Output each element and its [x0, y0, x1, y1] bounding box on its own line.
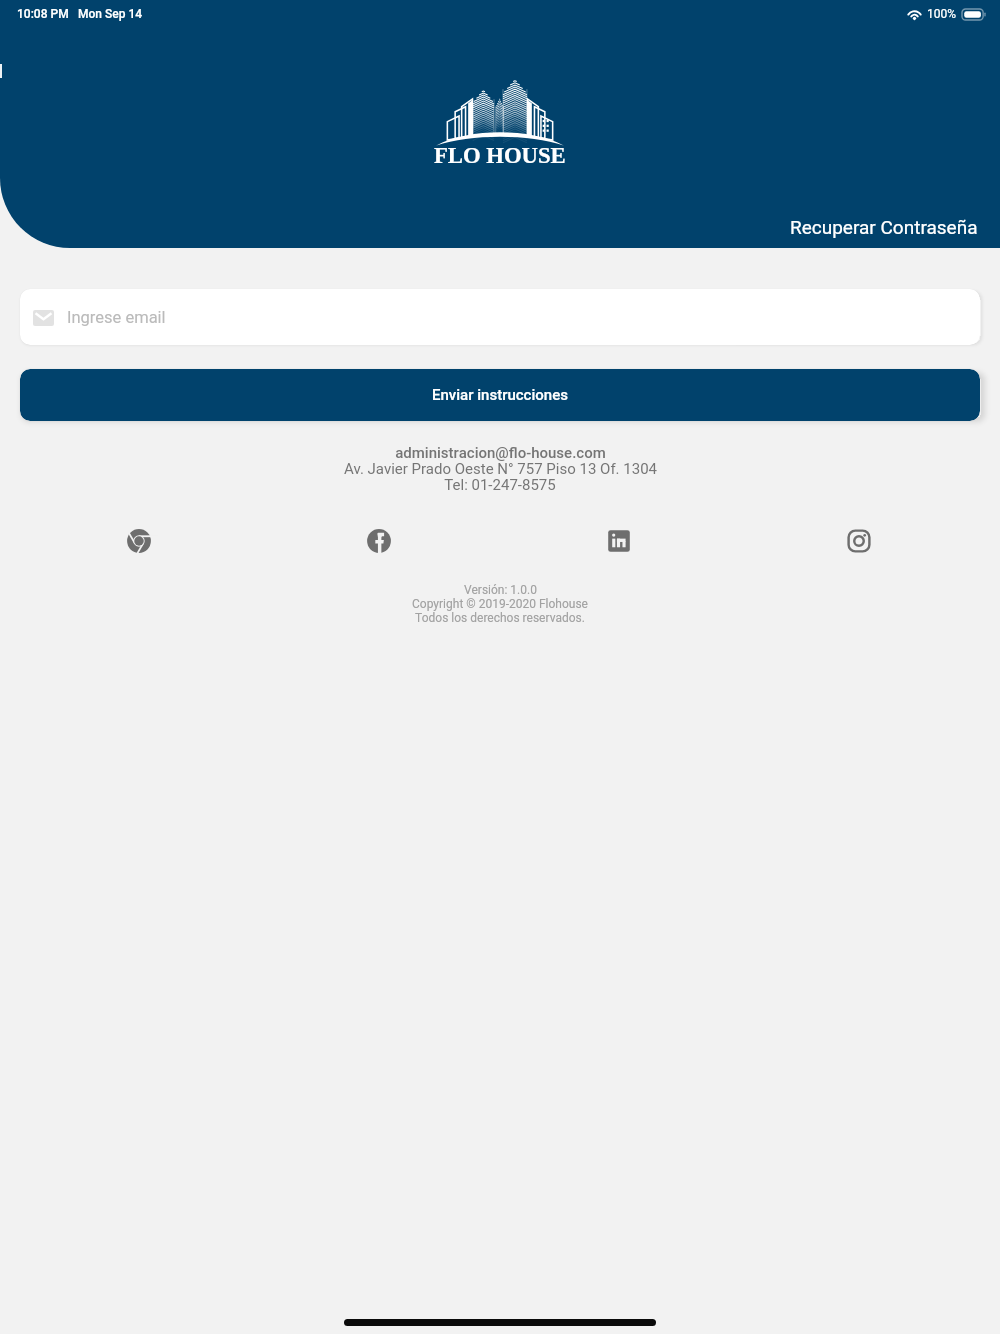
staticText: Copyright © 2019-2020 Flohouse: [412, 597, 588, 611]
button[interactable]: Enviar instrucciones: [20, 369, 980, 421]
staticText: Versión: 1.0.0: [464, 583, 537, 597]
staticText: Av. Javier Prado Oeste N° 757 Piso 13 Of…: [344, 460, 657, 478]
button[interactable]: LinkedIn: [601, 523, 637, 559]
staticText: Tel: 01-247-8575: [444, 476, 556, 494]
button[interactable]: Instagram: [841, 523, 877, 559]
button[interactable]: Facebook: [361, 523, 397, 559]
button[interactable]: Ingrese email: [20, 289, 980, 345]
staticText: Recuperar Contraseña: [790, 216, 978, 238]
button[interactable]: Sitio web: [121, 523, 157, 559]
staticText: Enviar instrucciones: [432, 386, 568, 404]
staticText: 10:08 PM: [17, 7, 69, 21]
staticText: administracion@flo-house.com: [395, 444, 606, 462]
staticText: 100%: [927, 7, 957, 21]
staticText: Todos los derechos reservados.: [415, 611, 585, 625]
staticText: Ingrese email: [67, 308, 166, 327]
staticText: FLO HOUSE: [434, 143, 566, 168]
staticText: Mon Sep 14: [78, 7, 143, 21]
